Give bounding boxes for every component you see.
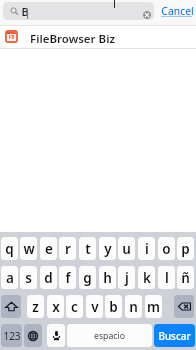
staticText: l [165,269,169,287]
button[interactable]: espacio [67,324,152,347]
staticText: y [104,240,112,258]
staticText: h [103,269,112,287]
button[interactable]: i [138,237,155,260]
staticText: q [5,240,14,258]
button[interactable]: h [99,266,116,289]
staticText: b [109,298,118,316]
staticText: Buscar [158,329,191,342]
staticText: d [44,269,53,287]
button[interactable]: n [125,295,142,318]
staticText: ñ [181,269,190,287]
staticText: z [32,298,39,316]
button[interactable]: Change keyboard [24,324,42,347]
button[interactable]: w [20,237,37,260]
staticText: Cancel [161,4,194,18]
button[interactable]: 123 [1,324,22,347]
staticText: s [25,269,32,287]
button[interactable]: p [177,237,194,260]
staticText: i [145,240,149,258]
button[interactable]: x [47,295,64,318]
button[interactable]: v [86,295,103,318]
button[interactable]: a [1,266,18,289]
staticText: FB [8,34,15,41]
staticText: w [23,240,35,258]
button[interactable]: FB [0,26,196,47]
staticText: o [162,240,171,258]
button[interactable]: g [79,266,96,289]
button[interactable]: y [99,237,116,260]
staticText: c [71,298,78,316]
staticText: FileBrowser Biz [30,31,115,47]
button[interactable]: e [40,237,57,260]
button[interactable]: ñ [177,266,194,289]
button[interactable]: m [145,295,162,318]
button[interactable]: j [118,266,135,289]
button[interactable]: Shift [1,295,21,318]
button[interactable]: f [59,266,76,289]
button[interactable]: q [1,237,18,260]
button[interactable]: l [158,266,175,289]
button[interactable]: t [79,237,96,260]
staticText: j [125,269,129,287]
staticText: m [147,298,160,316]
staticText: v [91,298,99,316]
button[interactable]: Clear text [143,11,151,19]
button[interactable]: Cancel [161,4,194,18]
staticText: t [85,240,91,258]
staticText: u [122,240,131,258]
button[interactable]: k [138,266,155,289]
staticText: n [129,298,138,316]
button[interactable]: c [66,295,83,318]
staticText: 123 [3,329,21,343]
button[interactable]: b [105,295,122,318]
button[interactable]: Buscar [154,324,195,347]
button[interactable]: s [20,266,37,289]
button[interactable]: Dictate [47,324,65,347]
button[interactable]: Backspace [174,295,194,318]
button[interactable]: u [118,237,135,260]
staticText: k [143,269,151,287]
button[interactable]: r [59,237,76,260]
staticText: B [21,4,29,19]
button[interactable]: z [27,295,44,318]
staticText: e [45,240,53,258]
button[interactable]: o [158,237,175,260]
staticText: x [52,298,60,316]
staticText: r [65,240,71,258]
staticText: f [65,269,71,287]
button[interactable]: B [3,2,154,20]
staticText: p [181,240,190,258]
button[interactable]: d [40,266,57,289]
staticText: g [83,269,92,287]
staticText: espacio [94,330,125,342]
staticText: a [6,269,14,287]
